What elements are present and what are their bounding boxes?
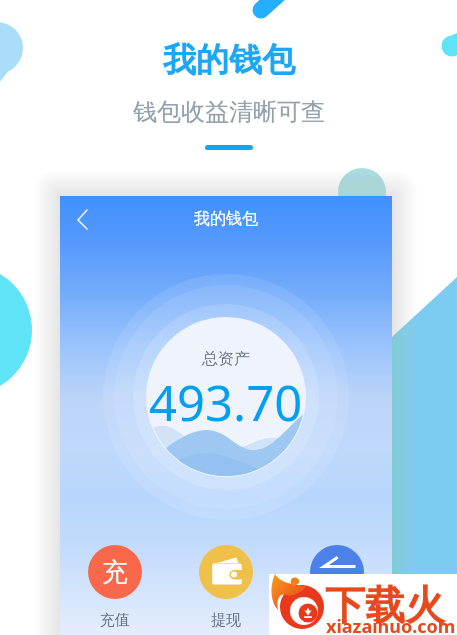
button[interactable]: 提现 [170,545,281,630]
button[interactable]: 转出 [281,545,392,630]
staticText: 充值 [100,611,130,630]
button[interactable]: Back [64,198,96,230]
button[interactable]: 充 [60,545,170,630]
staticText: xiazaihuo.com [326,614,456,635]
staticText: 充 [102,556,128,589]
staticText: 493.70 [149,369,303,436]
staticText: 下载火 [325,580,445,630]
staticText: 总资产 [202,349,250,369]
staticText: 提现 [211,611,241,630]
staticText: 我的钱包 [194,209,258,229]
staticText: 钱包收益清晰可查 [133,97,325,127]
staticText: 我的钱包 [163,39,295,81]
staticText: 转出 [322,611,352,630]
